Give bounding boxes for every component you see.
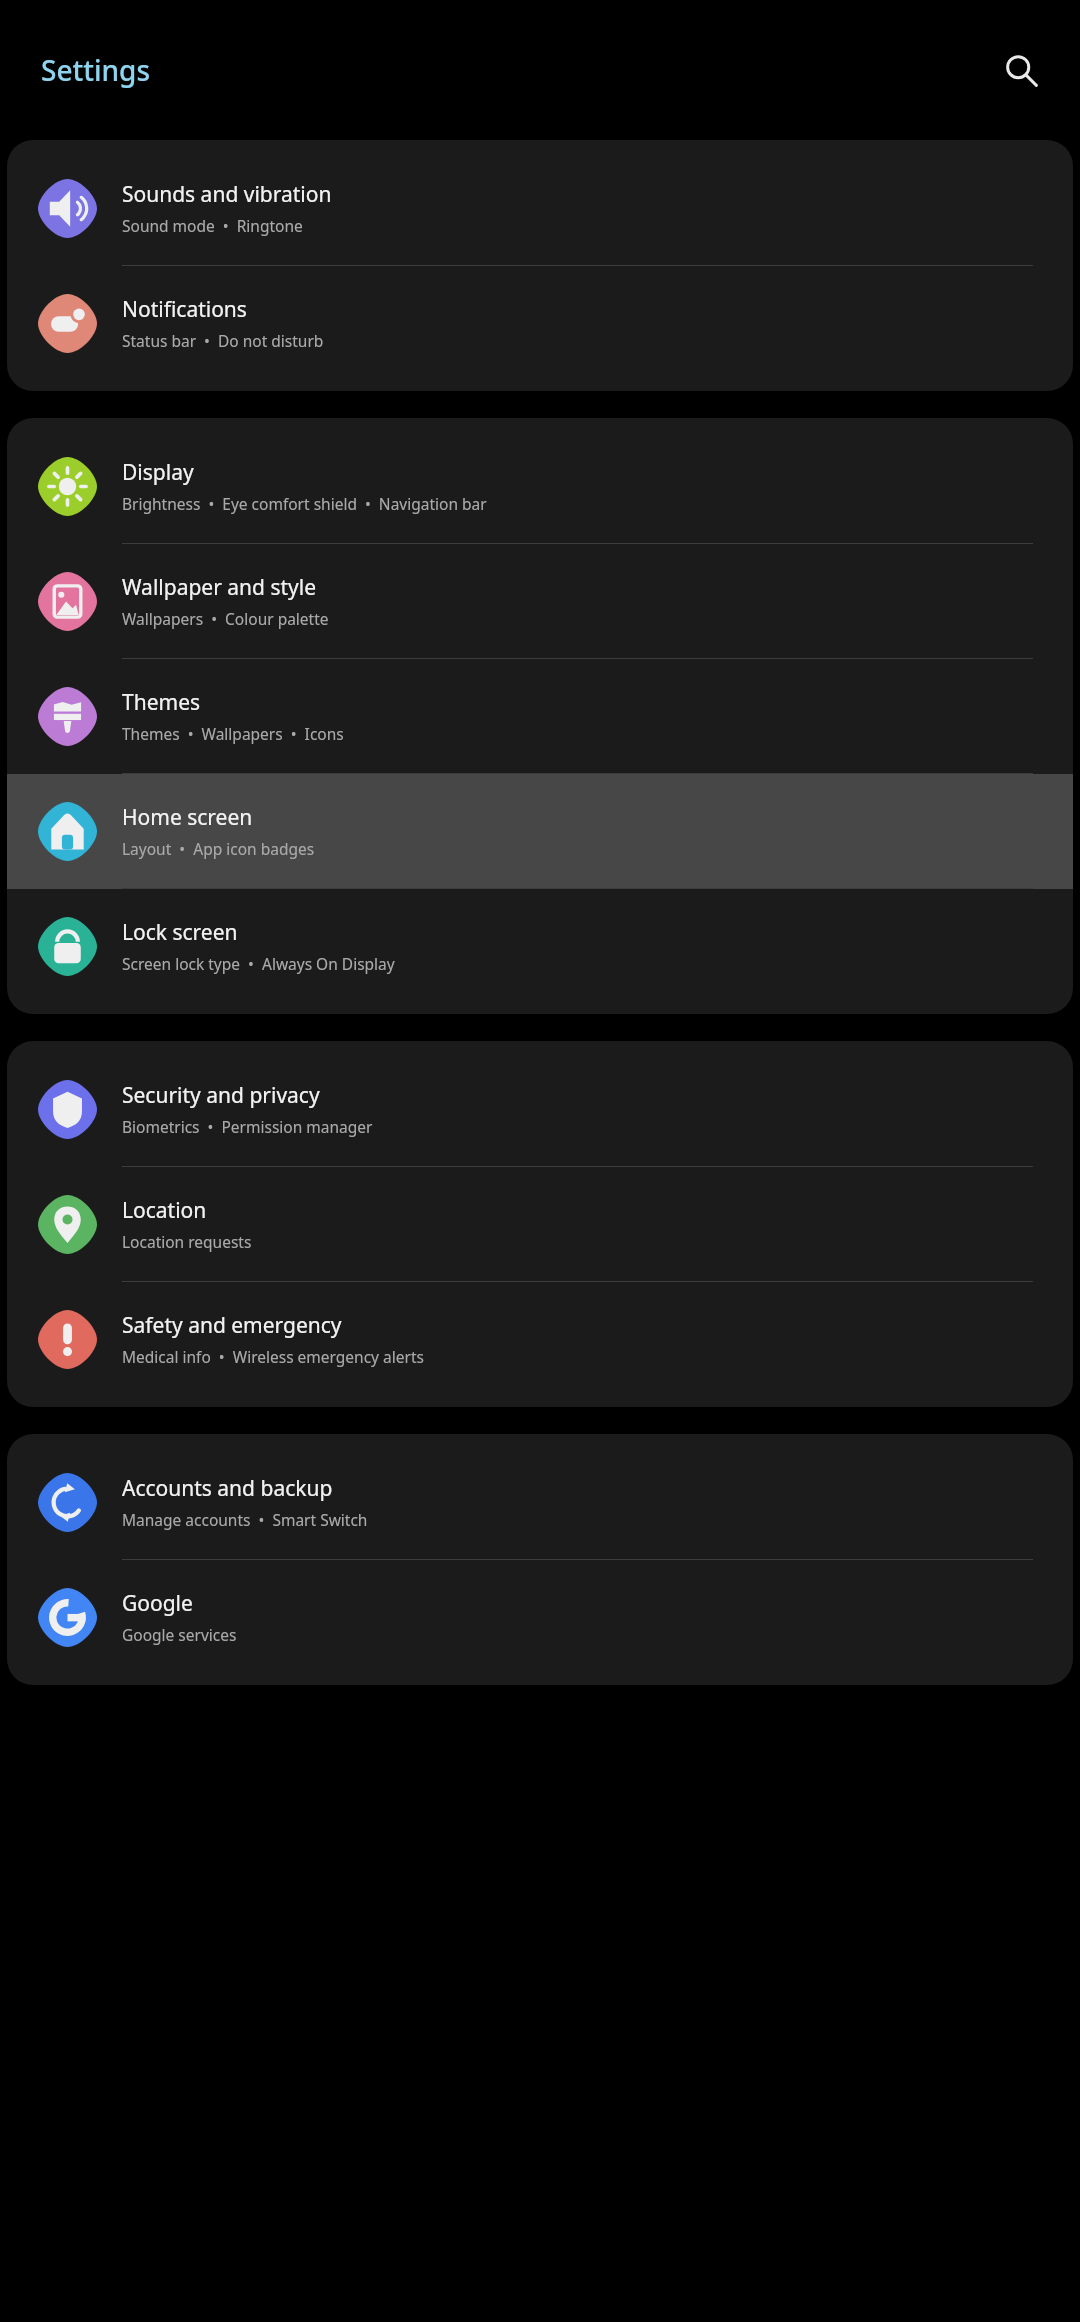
button[interactable]: Safety and emergency bbox=[7, 1282, 1073, 1396]
staticText: Medical info • Wireless emergency alerts bbox=[122, 1346, 424, 1367]
button[interactable]: Themes bbox=[7, 659, 1073, 774]
staticText: Sounds and vibration bbox=[122, 180, 332, 209]
staticText: Wallpapers • Colour palette bbox=[122, 608, 329, 629]
button[interactable]: Sounds and vibration bbox=[7, 151, 1073, 266]
staticText: Settings bbox=[41, 51, 151, 89]
staticText: Notifications bbox=[122, 295, 247, 324]
staticText: Safety and emergency bbox=[122, 1311, 342, 1340]
staticText: Status bar • Do not disturb bbox=[122, 330, 324, 351]
staticText: Manage accounts • Smart Switch bbox=[122, 1509, 368, 1530]
staticText: Security and privacy bbox=[122, 1081, 320, 1110]
staticText: Biometrics • Permission manager bbox=[122, 1116, 373, 1137]
staticText: Layout • App icon badges bbox=[122, 838, 315, 859]
button[interactable]: Lock screen bbox=[7, 889, 1073, 1003]
staticText: Sound mode • Ringtone bbox=[122, 215, 303, 236]
staticText: Location requests bbox=[122, 1231, 252, 1252]
staticText: Themes bbox=[122, 688, 201, 717]
staticText: Lock screen bbox=[122, 918, 238, 947]
staticText: Screen lock type • Always On Display bbox=[122, 953, 395, 974]
staticText: Themes • Wallpapers • Icons bbox=[122, 723, 344, 744]
staticText: Brightness • Eye comfort shield • Naviga… bbox=[122, 493, 487, 514]
button[interactable]: Display bbox=[7, 429, 1073, 544]
staticText: Location bbox=[122, 1196, 207, 1225]
staticText: Google services bbox=[122, 1624, 237, 1645]
button[interactable]: Security and privacy bbox=[7, 1052, 1073, 1167]
staticText: Display bbox=[122, 458, 194, 487]
button[interactable]: Notifications bbox=[7, 266, 1073, 380]
staticText: Wallpaper and style bbox=[122, 573, 317, 602]
staticText: Accounts and backup bbox=[122, 1474, 333, 1503]
button[interactable]: Search settings bbox=[992, 41, 1050, 99]
button[interactable]: Home screen bbox=[7, 774, 1073, 889]
button[interactable]: Location bbox=[7, 1167, 1073, 1282]
staticText: Google bbox=[122, 1589, 193, 1618]
button[interactable]: Google bbox=[7, 1560, 1073, 1674]
button[interactable]: Wallpaper and style bbox=[7, 544, 1073, 659]
button[interactable]: Accounts and backup bbox=[7, 1445, 1073, 1560]
staticText: Home screen bbox=[122, 803, 253, 832]
